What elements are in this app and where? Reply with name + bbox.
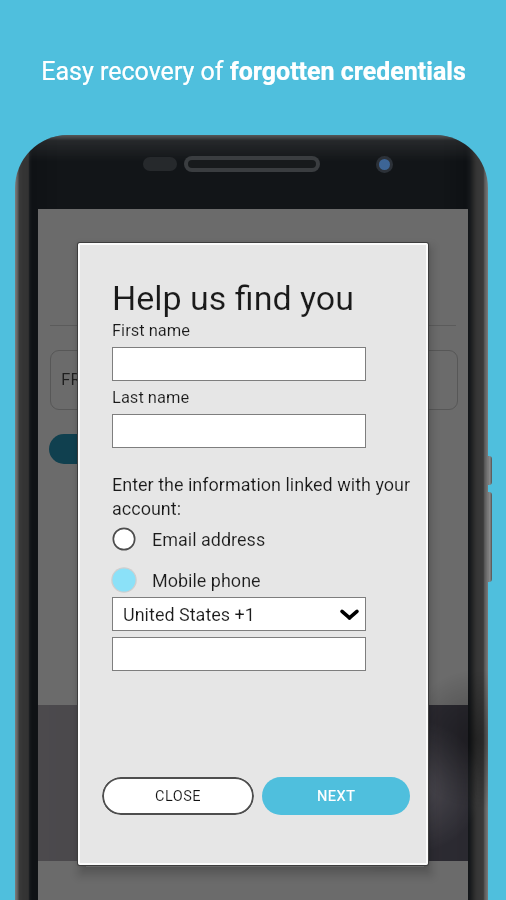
staticText: Email address bbox=[152, 529, 266, 550]
button[interactable] bbox=[112, 414, 366, 448]
staticText: Help us find you bbox=[112, 278, 355, 318]
staticText: Mobile phone bbox=[152, 570, 261, 591]
staticText: Easy recovery of forgotten credentials bbox=[41, 57, 466, 86]
button[interactable]: CLOSE bbox=[102, 777, 254, 815]
staticText: United States +1 bbox=[123, 604, 255, 625]
button[interactable]: Email address bbox=[112, 524, 266, 554]
button[interactable] bbox=[112, 637, 366, 671]
staticText: NEXT bbox=[317, 788, 356, 805]
button[interactable]: Mobile phone bbox=[112, 565, 261, 595]
staticText: CLOSE bbox=[155, 788, 202, 805]
staticText: Last name bbox=[112, 388, 190, 407]
staticText: First name bbox=[112, 321, 191, 340]
button[interactable]: NEXT bbox=[262, 777, 410, 815]
staticText: Enter the information linked with your a… bbox=[112, 474, 424, 520]
button[interactable] bbox=[112, 347, 366, 381]
staticText: FR bbox=[61, 369, 81, 389]
button[interactable]: Select country code bbox=[112, 597, 366, 631]
